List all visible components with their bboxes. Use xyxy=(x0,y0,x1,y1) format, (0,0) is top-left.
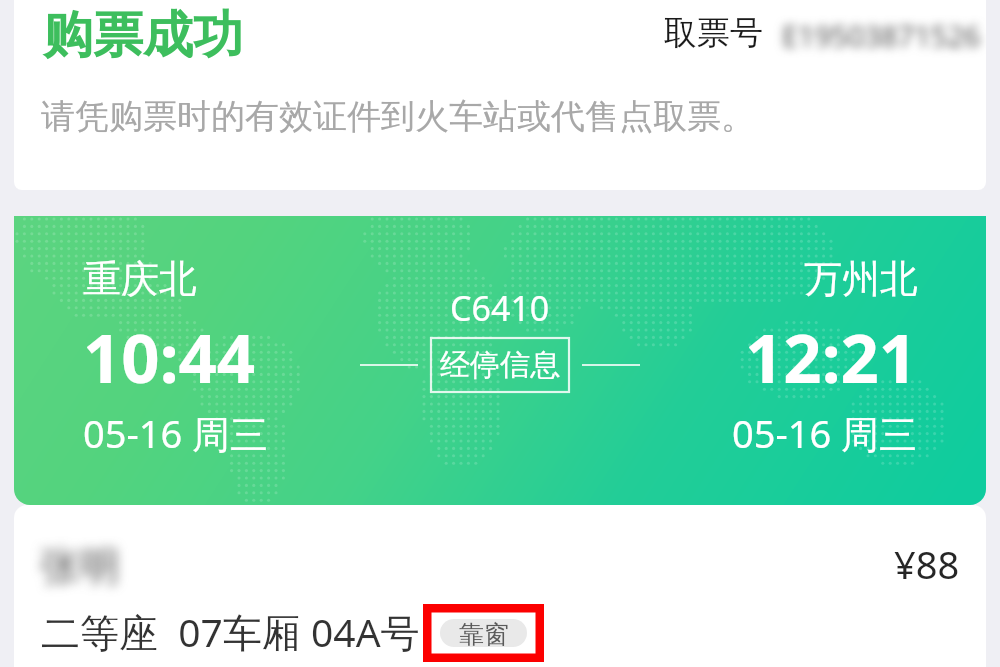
staticText: 05-16 周三 xyxy=(83,407,269,459)
staticText: 万州北 xyxy=(804,255,918,303)
staticText: 10:44 xyxy=(83,311,256,402)
staticText: 张明 xyxy=(40,541,120,591)
staticText: 二等座 07车厢 04A号 xyxy=(41,605,420,658)
staticText: 取票号 xyxy=(664,12,763,54)
staticText: E19503871526 xyxy=(782,16,981,55)
staticText: 05-16 周三 xyxy=(732,407,918,459)
button[interactable]: 经停信息 xyxy=(431,338,569,392)
staticText: C6410 xyxy=(450,285,550,331)
staticText: 经停信息 xyxy=(440,346,560,384)
staticText: 购票成功 xyxy=(43,4,243,67)
button[interactable]: 靠窗 xyxy=(440,619,527,647)
staticText: 重庆北 xyxy=(83,255,197,303)
staticText: ¥88 xyxy=(894,538,960,590)
staticText: 靠窗 xyxy=(459,619,509,647)
staticText: 12:21 xyxy=(745,311,918,402)
staticText: 请凭购票时的有效证件到火车站或代售点取票。 xyxy=(41,95,755,138)
